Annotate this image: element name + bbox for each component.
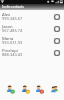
- staticText: 567-485-74: [2, 28, 23, 33]
- button[interactable]: Select Maria: [54, 38, 60, 44]
- button[interactable]: Select Alex: [54, 14, 60, 20]
- button[interactable]: Groups: [49, 84, 59, 94]
- button[interactable]: Edit contact: [20, 84, 30, 94]
- button[interactable]: Select Jason: [54, 26, 60, 32]
- button[interactable]: Alex: [0, 11, 64, 23]
- staticText: 888-343-43: [2, 52, 23, 57]
- button[interactable]: Select Pinelopi: [54, 50, 60, 56]
- button[interactable]: Pinelopi: [0, 47, 64, 59]
- staticText: Pinelopi: [2, 48, 18, 54]
- staticText: Invite contacts: [2, 5, 24, 9]
- button[interactable]: Jason: [0, 23, 64, 35]
- staticText: Jason: [2, 24, 13, 30]
- staticText: 999-345-67: [2, 16, 23, 21]
- button[interactable]: Remove contact: [34, 84, 44, 94]
- staticText: Alex: [2, 12, 11, 18]
- button[interactable]: Add contact: [5, 84, 15, 94]
- staticText: 993-031-93: [2, 40, 23, 45]
- staticText: Maria: [2, 36, 14, 42]
- button[interactable]: Maria: [0, 35, 64, 47]
